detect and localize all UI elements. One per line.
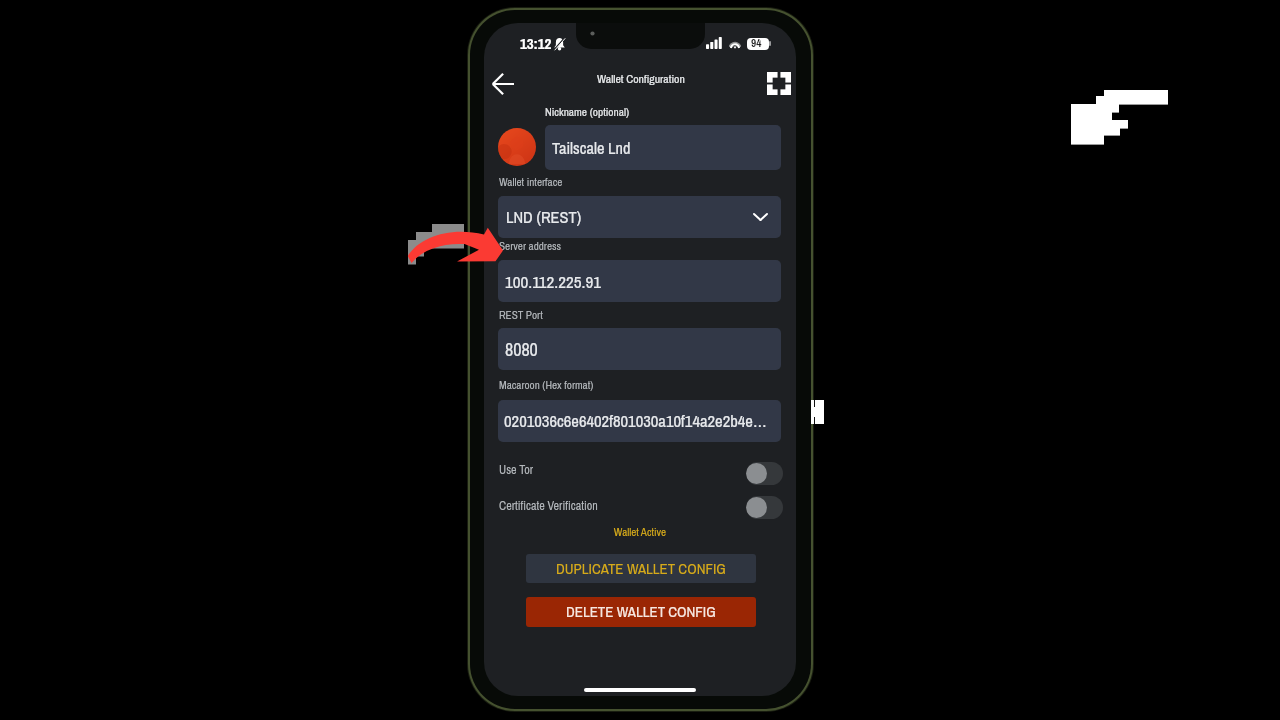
staticText: Tailscale Lnd bbox=[552, 137, 631, 159]
staticText: DUPLICATE WALLET CONFIG bbox=[556, 559, 726, 579]
staticText: Wallet Configuration bbox=[597, 71, 685, 87]
button[interactable]: Use Tor bbox=[746, 462, 783, 485]
staticText: 0201036c6e6402f801030a10f14a2e2b4e… bbox=[504, 410, 767, 432]
button[interactable]: Fullscreen bbox=[761, 66, 796, 101]
staticText: Wallet interface bbox=[499, 174, 563, 189]
staticText: Macaroon (Hex format) bbox=[499, 377, 594, 392]
staticText: LND (REST) bbox=[506, 206, 582, 228]
button[interactable]: LND (REST) bbox=[498, 196, 781, 238]
button[interactable]: Certificate Verification bbox=[746, 496, 783, 519]
button[interactable]: Tailscale Lnd bbox=[545, 125, 781, 170]
staticText: REST Port bbox=[499, 307, 543, 322]
button[interactable]: 8080 bbox=[498, 328, 781, 370]
button[interactable]: Back bbox=[484, 67, 520, 101]
staticText: Use Tor bbox=[499, 461, 533, 477]
staticText: 100.112.225.91 bbox=[505, 270, 601, 293]
staticText: Nickname (optional) bbox=[545, 104, 630, 119]
button[interactable]: 0201036c6e6402f801030a10f14a2e2b4e… bbox=[498, 400, 781, 442]
staticText: Wallet Active bbox=[484, 525, 796, 540]
button[interactable]: 100.112.225.91 bbox=[498, 260, 781, 302]
staticText: 8080 bbox=[505, 337, 538, 361]
staticText: Certificate Verification bbox=[499, 497, 598, 513]
button[interactable]: DELETE WALLET CONFIG bbox=[526, 597, 756, 627]
staticText: 94 bbox=[751, 35, 762, 50]
staticText: 13:12 bbox=[520, 33, 552, 53]
button[interactable]: DUPLICATE WALLET CONFIG bbox=[526, 554, 756, 583]
staticText: DELETE WALLET CONFIG bbox=[566, 602, 716, 622]
staticText: Server address bbox=[499, 238, 562, 253]
